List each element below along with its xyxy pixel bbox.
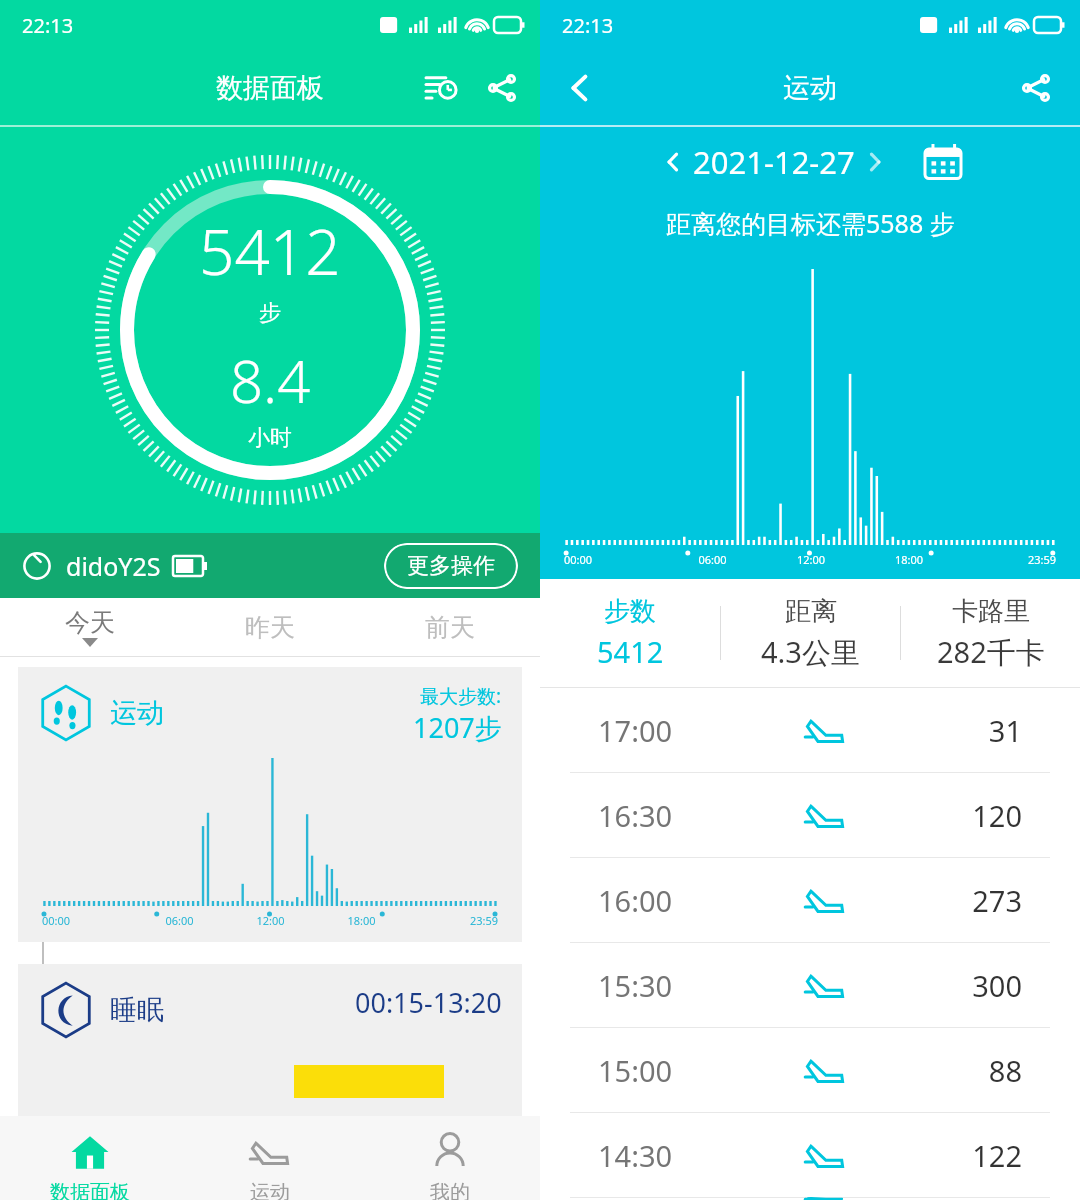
staticText: 卡路里	[952, 595, 1030, 628]
button[interactable]: 数据面板	[0, 1116, 180, 1200]
staticText: 16:30	[598, 796, 718, 835]
staticText: 运动	[110, 696, 164, 730]
button[interactable]: Calendar	[919, 138, 967, 186]
staticText: 06:00	[134, 913, 225, 928]
staticText: 12:00	[762, 552, 860, 567]
staticText: 00:15-13:20	[355, 984, 502, 1021]
staticText: 步	[259, 299, 281, 327]
staticText: 300	[932, 966, 1022, 1005]
button[interactable]: 昨天	[180, 598, 360, 656]
staticText: 我的	[430, 1180, 470, 1200]
staticText: 16:00	[598, 881, 718, 920]
staticText: 今天	[65, 607, 115, 638]
staticText: 运动	[783, 71, 837, 105]
button[interactable]: Share	[1014, 66, 1058, 110]
button[interactable]: 17:00	[540, 688, 1080, 772]
button[interactable]: 今天	[0, 598, 180, 656]
staticText: 数据面板	[216, 71, 324, 105]
button[interactable]: 16:00	[540, 858, 1080, 942]
staticText: 更多操作	[407, 552, 495, 580]
button[interactable]: 15:30	[540, 943, 1080, 1027]
staticText: 1207步	[413, 709, 502, 746]
button[interactable]: 14:00	[540, 1198, 1080, 1200]
button[interactable]: 14:30	[540, 1113, 1080, 1197]
button[interactable]: 15:00	[540, 1028, 1080, 1112]
staticText: 18:00	[860, 552, 958, 567]
button[interactable]: Previous day	[653, 142, 693, 182]
staticText: 距离您的目标还需5588 步	[666, 206, 955, 240]
staticText: 31	[932, 711, 1022, 750]
staticText: 14:30	[598, 1136, 718, 1175]
staticText: 00:00	[564, 552, 663, 567]
button[interactable]: Share	[482, 68, 522, 108]
staticText: 5412	[199, 209, 341, 293]
staticText: 120	[932, 796, 1022, 835]
staticText: 00:00	[42, 913, 134, 928]
staticText: 8.4	[230, 341, 311, 420]
button[interactable]: 距离	[721, 595, 900, 672]
staticText: 最大步数:	[420, 683, 502, 709]
staticText: 前天	[425, 612, 475, 643]
staticText: didoY2S	[66, 549, 161, 583]
button[interactable]: 运动	[18, 667, 522, 942]
staticText: 15:00	[598, 1051, 718, 1090]
staticText: 23:59	[407, 913, 498, 928]
staticText: 小时	[248, 424, 292, 452]
staticText: 22:13	[562, 12, 614, 39]
button[interactable]: 步数	[540, 595, 720, 671]
staticText: 12:00	[225, 913, 316, 928]
staticText: 4.3公里	[761, 632, 860, 672]
staticText: 22:13	[22, 12, 74, 39]
button[interactable]: didoY2S	[0, 533, 540, 598]
staticText: 数据面板	[50, 1180, 130, 1200]
staticText: 15:30	[598, 966, 718, 1005]
button[interactable]: Back	[552, 60, 608, 116]
staticText: 步数	[604, 595, 656, 628]
staticText: 2021-12-27	[693, 141, 855, 183]
staticText: 273	[932, 881, 1022, 920]
staticText: 122	[932, 1136, 1022, 1175]
button[interactable]: Next day	[855, 142, 895, 182]
button[interactable]: 16:30	[540, 773, 1080, 857]
staticText: 17:00	[598, 711, 718, 750]
button[interactable]: 运动	[180, 1116, 360, 1200]
button[interactable]: 前天	[360, 598, 540, 656]
button[interactable]: 卡路里	[901, 595, 1080, 672]
staticText: 昨天	[245, 612, 295, 643]
button[interactable]: 我的	[360, 1116, 540, 1200]
staticText: 运动	[250, 1180, 290, 1200]
staticText: 282千卡	[937, 632, 1045, 672]
staticText: 距离	[785, 595, 837, 628]
staticText: 88	[932, 1051, 1022, 1090]
staticText: 06:00	[663, 552, 762, 567]
button[interactable]: History	[422, 68, 462, 108]
staticText: 睡眠	[110, 993, 164, 1027]
staticText: 23:59	[958, 552, 1056, 567]
button[interactable]: 更多操作	[384, 543, 518, 589]
staticText: 5412	[597, 632, 664, 671]
button[interactable]: 睡眠	[18, 964, 522, 1116]
staticText: 18:00	[316, 913, 407, 928]
